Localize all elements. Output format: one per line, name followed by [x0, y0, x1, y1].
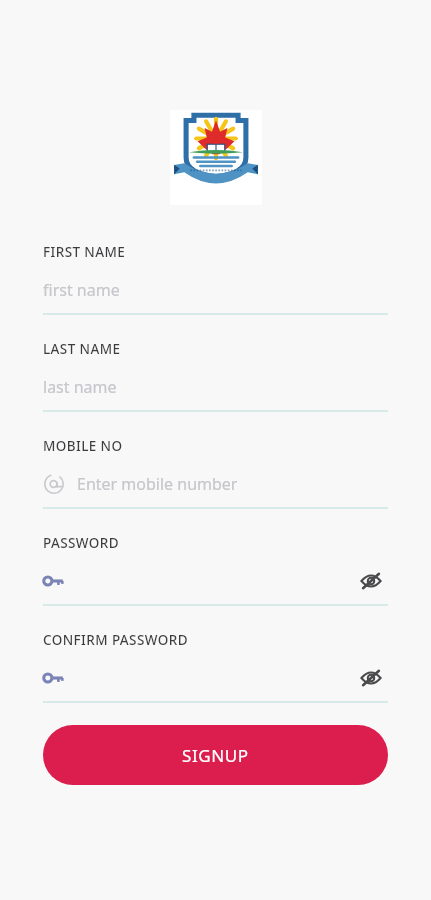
button[interactable]: PASSWORD [43, 534, 388, 606]
button[interactable]: SIGNUP [43, 725, 388, 785]
button[interactable]: CONFIRM PASSWORD [43, 631, 388, 703]
button[interactable]: Show password [354, 568, 388, 594]
staticText: MOBILE NO [43, 437, 123, 455]
staticText: FIRST NAME [43, 243, 126, 261]
staticText: SIGNUP [182, 744, 249, 767]
button[interactable]: FIRST NAME [43, 243, 388, 315]
staticText: LAST NAME [43, 340, 121, 358]
button[interactable]: Show confirm password [354, 665, 388, 691]
staticText: CONFIRM PASSWORD [43, 631, 188, 649]
staticText: first name [43, 279, 120, 301]
staticText: PASSWORD [43, 534, 120, 552]
staticText: last name [43, 376, 117, 398]
staticText: Enter mobile number [77, 473, 238, 495]
button[interactable]: LAST NAME [43, 340, 388, 412]
button[interactable]: MOBILE NO [43, 437, 388, 509]
